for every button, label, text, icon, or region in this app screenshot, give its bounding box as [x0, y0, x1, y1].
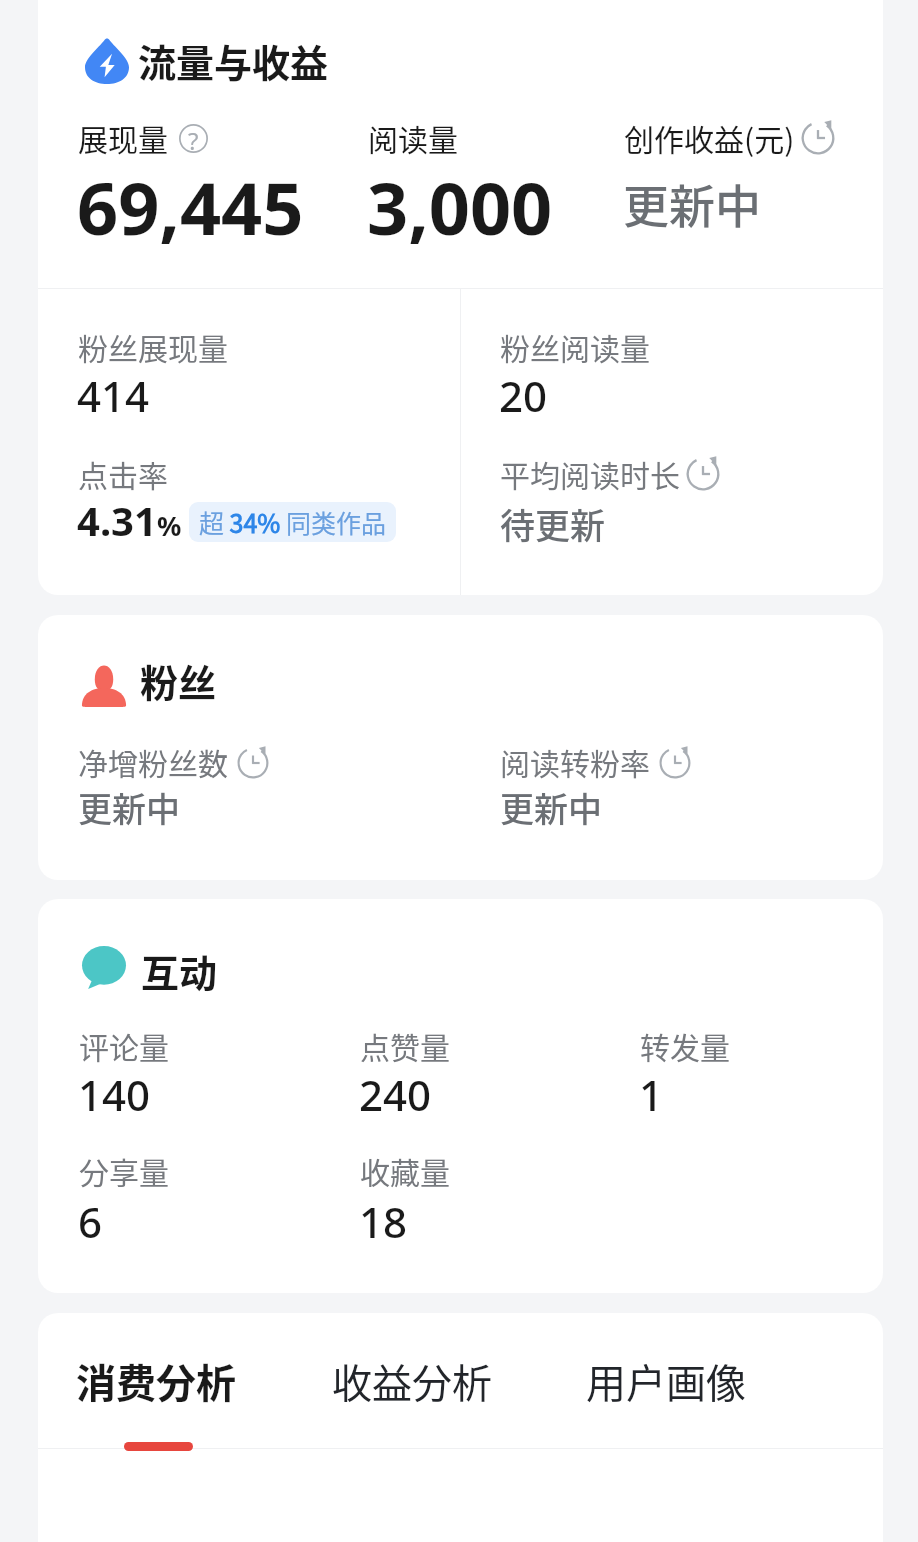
button[interactable] — [38, 899, 883, 1293]
button[interactable] — [314, 1340, 514, 1436]
staticText: 净增粉丝数 — [78, 740, 228, 783]
button[interactable] — [38, 1313, 883, 1542]
button[interactable]: 展现量说明 — [179, 124, 208, 153]
staticText: 69,445 — [77, 158, 304, 256]
button[interactable] — [38, 0, 883, 595]
staticText: 更新中 — [500, 783, 602, 832]
staticText: 展现量 — [78, 116, 168, 159]
staticText: 240 — [359, 1066, 432, 1123]
staticText: ? — [188, 124, 199, 153]
button[interactable] — [568, 1340, 768, 1436]
staticText: 4.31% — [77, 493, 182, 547]
staticText: 20 — [499, 367, 548, 424]
staticText: 更新中 — [623, 170, 761, 237]
staticText: 414 — [77, 367, 150, 424]
staticText: 6 — [78, 1193, 103, 1250]
staticText: 140 — [78, 1066, 151, 1123]
button[interactable] — [38, 615, 883, 880]
staticText: 待更新 — [500, 498, 606, 549]
staticText: 超 34% 同类作品 — [199, 504, 386, 540]
staticText: 1 — [639, 1066, 664, 1123]
staticText: 互动 — [141, 943, 218, 998]
staticText: 平均阅读时长 — [500, 452, 680, 495]
button[interactable] — [58, 1340, 258, 1436]
staticText: 阅读转粉率 — [500, 740, 650, 783]
staticText: 创作收益(元) — [624, 116, 795, 159]
staticText: 3,000 — [367, 158, 553, 256]
staticText: 粉丝 — [140, 653, 217, 708]
staticText: 评论量 — [79, 1024, 169, 1067]
staticText: 用户画像 — [586, 1352, 746, 1410]
staticText: 阅读量 — [368, 116, 458, 159]
staticText: 转发量 — [640, 1024, 730, 1067]
staticText: 流量与收益 — [138, 33, 329, 88]
staticText: 粉丝阅读量 — [500, 325, 650, 368]
staticText: 更新中 — [78, 783, 180, 832]
staticText: 点击率 — [78, 452, 168, 495]
staticText: 收藏量 — [360, 1149, 450, 1192]
staticText: 点赞量 — [360, 1024, 450, 1067]
staticText: 分享量 — [79, 1149, 169, 1192]
staticText: 18 — [359, 1193, 408, 1250]
staticText: 粉丝展现量 — [78, 325, 228, 368]
staticText: 收益分析 — [332, 1352, 492, 1410]
staticText: 消费分析 — [76, 1352, 236, 1410]
